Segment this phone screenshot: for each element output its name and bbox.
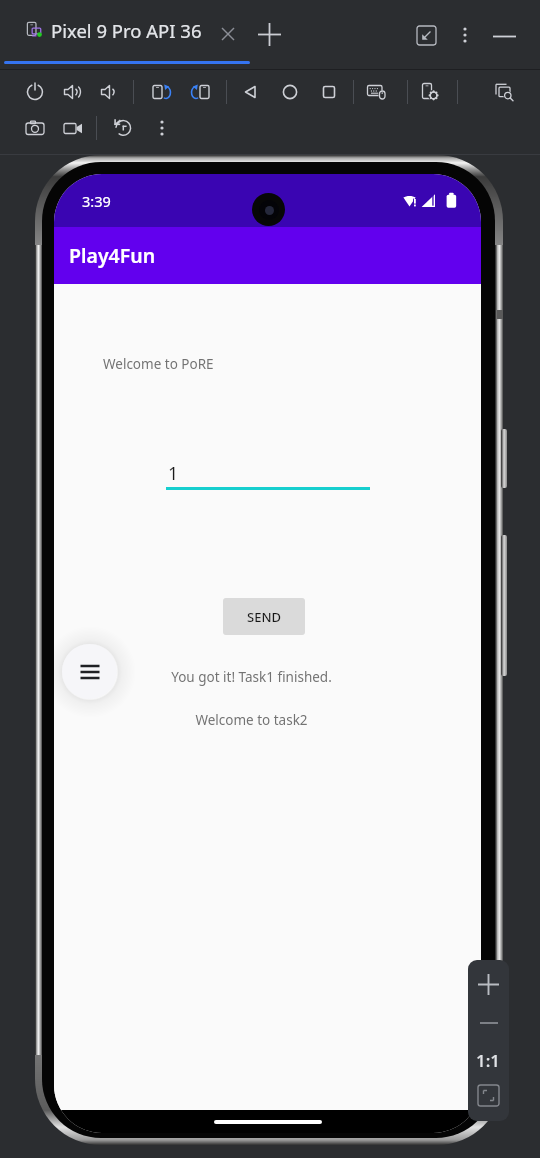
staticText: Welcome to PoRE [103, 355, 214, 373]
button[interactable]: Zoom to fit [468, 1077, 509, 1113]
button[interactable]: Device settings [416, 78, 444, 106]
button[interactable]: Dock [411, 20, 441, 50]
button[interactable]: Minimize [488, 20, 520, 52]
button[interactable]: Record [59, 114, 87, 142]
button[interactable]: Pixel 9 Pro API 36 [4, 0, 250, 61]
button[interactable]: Home [276, 78, 304, 106]
button[interactable]: More [148, 114, 176, 142]
button[interactable]: Volume down [96, 78, 124, 106]
button[interactable]: SEND [223, 598, 305, 635]
button[interactable]: Power [21, 78, 49, 106]
button[interactable]: Screenshot [21, 114, 49, 142]
button[interactable]: Close tab [216, 22, 240, 46]
button[interactable]: Rotate left [147, 78, 175, 106]
button[interactable]: Keyboard and mouse [363, 78, 391, 106]
button[interactable]: Emulator menu [62, 644, 117, 699]
staticText: 1 [168, 461, 179, 486]
button[interactable]: Volume up [59, 78, 87, 106]
staticText: Pixel 9 Pro API 36 [51, 18, 202, 43]
staticText: Welcome to task2 [54, 711, 465, 729]
staticText: 3:39 [82, 191, 111, 211]
staticText: You got it! Task1 finished. [54, 668, 465, 686]
button[interactable]: Zoom to actual size [468, 1042, 509, 1078]
button[interactable]: Zoom out [468, 1006, 509, 1040]
staticText: SEND [247, 608, 281, 626]
button[interactable]: Device manager [490, 78, 518, 106]
button[interactable]: History [109, 114, 137, 142]
button[interactable]: New tab [253, 18, 285, 50]
button[interactable]: More options [450, 20, 480, 50]
button[interactable]: Zoom in [468, 964, 509, 1004]
button[interactable]: Rotate right [187, 78, 215, 106]
staticText: 1:1 [476, 1049, 501, 1072]
button[interactable]: Back [237, 78, 265, 106]
button[interactable]: Overview [315, 78, 343, 106]
staticText: Play4Fun [69, 242, 156, 269]
